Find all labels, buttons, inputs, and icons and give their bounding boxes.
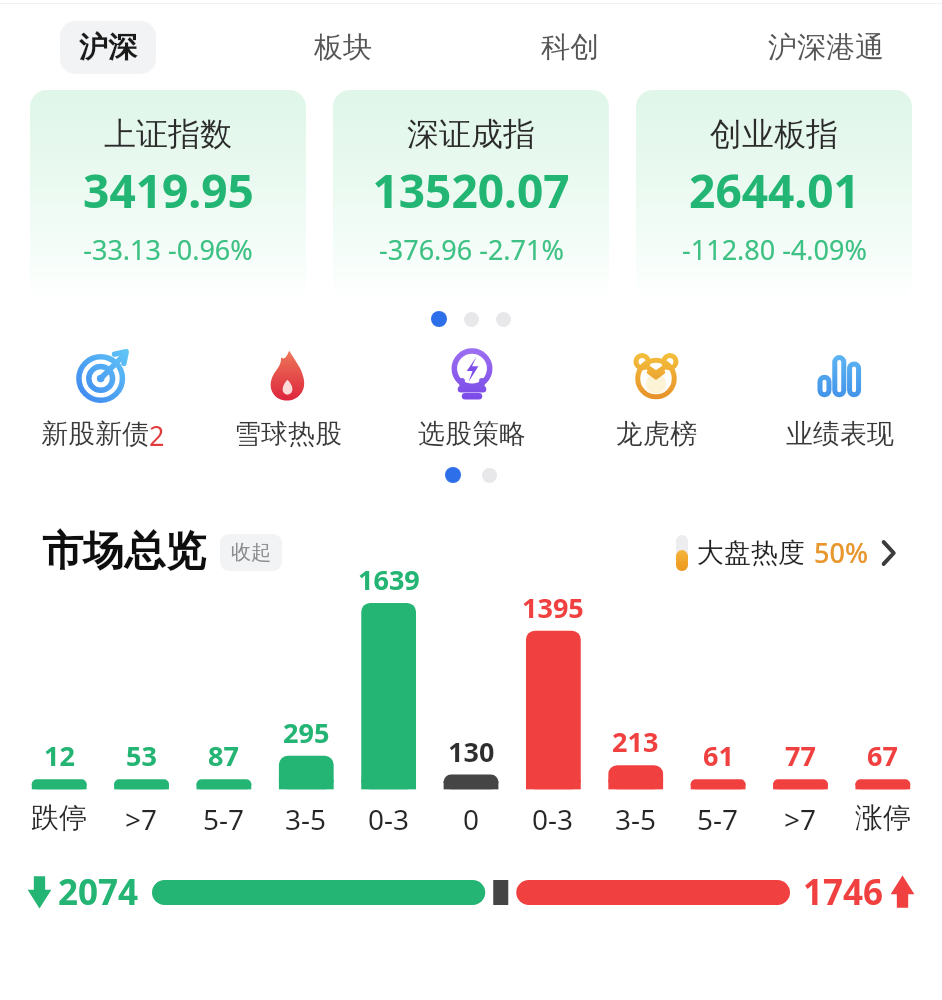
button[interactable]: 沪深港通	[758, 21, 894, 74]
staticText: 5-7	[203, 800, 245, 838]
staticText: 0-3	[532, 800, 574, 838]
staticText: 3419.95	[83, 159, 254, 222]
staticText: 12	[44, 737, 75, 774]
staticText: 深证成指	[407, 114, 535, 154]
staticText: 板块	[314, 29, 372, 66]
staticText: 收起	[231, 540, 271, 565]
staticText: 2	[149, 417, 165, 454]
staticText: 科创	[541, 29, 599, 66]
button[interactable]: 选股策略	[380, 340, 564, 451]
staticText: 1395	[522, 589, 584, 626]
staticText: 沪深港通	[768, 29, 884, 66]
staticText: 53	[126, 737, 157, 774]
staticText: >7	[125, 800, 158, 838]
button[interactable]: 雪球热股	[195, 340, 380, 451]
staticText: 涨停	[855, 800, 911, 835]
staticText: -376.96 -2.71%	[379, 231, 564, 268]
other: Advancing	[889, 874, 916, 910]
staticText: 61	[703, 737, 734, 774]
button[interactable]: 业绩表现	[748, 340, 932, 451]
button[interactable]: 上证指数	[30, 90, 306, 298]
staticText: 3-5	[285, 800, 327, 838]
button[interactable]: 龙虎榜	[564, 340, 748, 451]
staticText: 87	[208, 737, 239, 774]
staticText: 295	[283, 714, 330, 751]
staticText: 2644.01	[689, 159, 860, 222]
staticText: 2074	[58, 868, 139, 916]
staticText: 3-5	[615, 800, 657, 838]
button[interactable]: 沪深	[60, 21, 156, 74]
button[interactable]: 科创	[531, 21, 609, 74]
staticText: 0-3	[368, 800, 410, 838]
other: Declining	[26, 874, 53, 910]
staticText: 大盘热度	[697, 536, 805, 570]
staticText: 1639	[358, 561, 420, 598]
staticText: 跌停	[31, 800, 87, 835]
staticText: 上证指数	[104, 114, 232, 154]
button[interactable]: 大盘热度	[672, 530, 900, 575]
staticText: 市场总览	[42, 526, 206, 578]
staticText: 0	[463, 800, 480, 838]
button[interactable]: 创业板指	[636, 90, 912, 298]
staticText: 龙虎榜	[616, 417, 697, 451]
button[interactable]: 收起	[220, 534, 282, 571]
staticText: 50%	[814, 534, 868, 571]
button[interactable]: 新股新债	[10, 340, 195, 454]
staticText: 213	[612, 723, 659, 760]
staticText: 业绩表现	[786, 417, 894, 451]
staticText: 创业板指	[710, 114, 838, 154]
button[interactable]: 板块	[304, 21, 382, 74]
staticText: 雪球热股	[234, 417, 342, 451]
staticText: 130	[448, 733, 495, 770]
staticText: 13520.07	[372, 159, 570, 222]
staticText: 77	[785, 737, 816, 774]
staticText: -112.80 -4.09%	[682, 231, 867, 268]
staticText: 选股策略	[418, 417, 526, 451]
staticText: 新股新债	[41, 417, 149, 451]
staticText: 5-7	[697, 800, 739, 838]
button[interactable]: 深证成指	[333, 90, 609, 298]
staticText: -33.13 -0.96%	[83, 231, 253, 268]
staticText: >7	[784, 800, 817, 838]
staticText: 67	[867, 737, 898, 774]
staticText: 1746	[803, 868, 884, 916]
staticText: 沪深	[79, 29, 137, 66]
